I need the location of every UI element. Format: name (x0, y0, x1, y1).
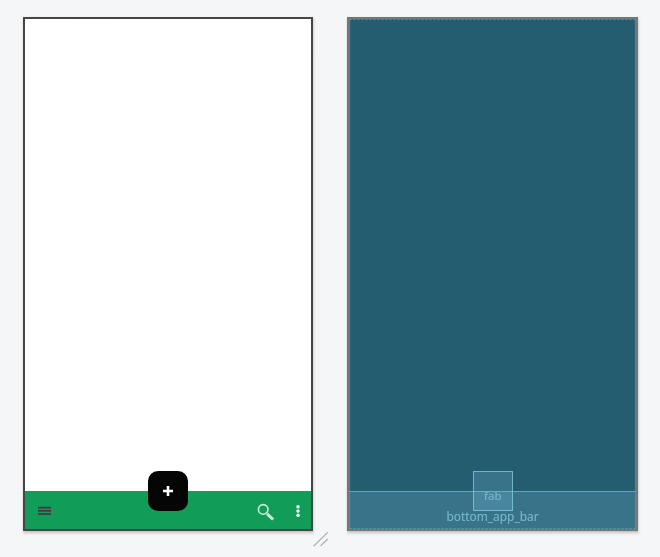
button[interactable]: Navigation menu (24, 491, 312, 530)
button[interactable]: Search (250, 497, 280, 527)
staticText: fab (484, 488, 502, 504)
button[interactable]: Navigation menu (29, 495, 59, 525)
staticText: bottom_app_bar (446, 508, 539, 524)
button[interactable]: More options (285, 498, 311, 524)
button[interactable]: Add (148, 471, 188, 511)
button[interactable]: Resize preview (312, 530, 330, 548)
button[interactable]: bottom_app_bar (349, 491, 636, 529)
button[interactable]: fab (473, 471, 513, 511)
